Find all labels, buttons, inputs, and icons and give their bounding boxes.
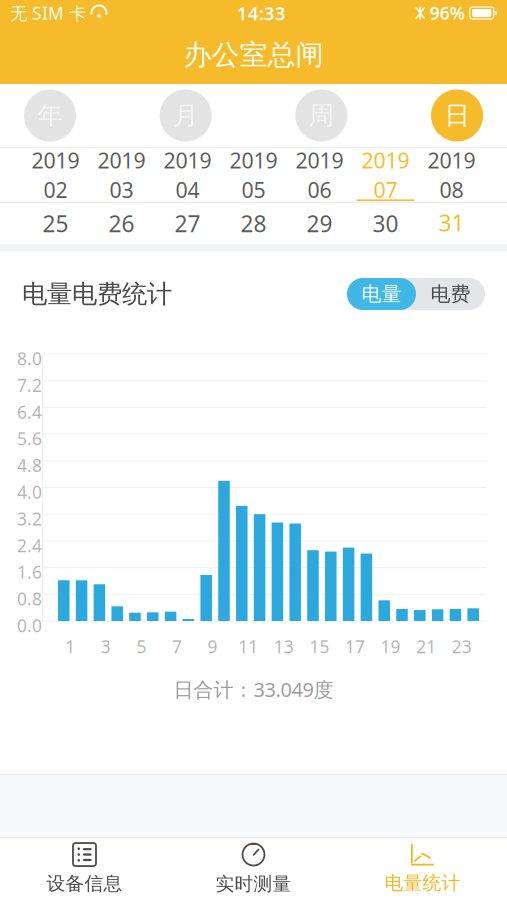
button[interactable]: 28 bbox=[220, 203, 286, 243]
staticText: 14:33 bbox=[237, 1, 286, 25]
button[interactable]: 27 bbox=[154, 203, 220, 243]
staticText: 29 bbox=[306, 208, 332, 238]
button[interactable]: 2019 bbox=[220, 149, 286, 201]
staticText: 27 bbox=[174, 208, 200, 238]
staticText: 04 bbox=[175, 175, 199, 204]
staticText: 26 bbox=[108, 208, 134, 238]
button[interactable]: 30 bbox=[352, 203, 418, 243]
staticText: 日合计：33.049度 bbox=[173, 676, 333, 703]
button[interactable]: 2019 bbox=[88, 149, 154, 201]
button[interactable]: 实时测量 bbox=[169, 838, 338, 900]
button[interactable]: 26 bbox=[88, 203, 154, 243]
staticText: 23 bbox=[452, 635, 472, 658]
staticText: 17 bbox=[345, 635, 365, 658]
staticText: 7 bbox=[172, 635, 182, 658]
button[interactable]: 25 bbox=[22, 203, 88, 243]
staticText: 0.8 bbox=[17, 587, 42, 610]
staticText: 2019 bbox=[97, 146, 145, 174]
button[interactable]: 2019 bbox=[154, 149, 220, 201]
staticText: 1.6 bbox=[17, 561, 42, 584]
button[interactable]: 2019 bbox=[286, 149, 352, 201]
staticText: 9 bbox=[208, 635, 218, 658]
staticText: 28 bbox=[240, 208, 266, 238]
staticText: 11 bbox=[238, 635, 258, 658]
staticText: 07 bbox=[373, 175, 397, 204]
staticText: 6.4 bbox=[17, 400, 42, 423]
staticText: 2019 bbox=[31, 146, 79, 174]
staticText: 8.0 bbox=[17, 347, 42, 370]
staticText: 3.2 bbox=[17, 507, 42, 530]
staticText: 办公室总闸 bbox=[183, 38, 323, 72]
staticText: 1 bbox=[65, 635, 75, 658]
staticText: 03 bbox=[109, 175, 133, 204]
staticText: 05 bbox=[241, 175, 265, 204]
staticText: 02 bbox=[43, 175, 67, 204]
staticText: 4.8 bbox=[17, 454, 42, 477]
staticText: 年 bbox=[37, 100, 62, 131]
staticText: 15 bbox=[309, 635, 329, 658]
staticText: 0.0 bbox=[17, 614, 42, 637]
staticText: 25 bbox=[42, 208, 68, 238]
staticText: 96% bbox=[430, 1, 465, 24]
button[interactable]: 电费 bbox=[416, 278, 485, 310]
staticText: 21 bbox=[416, 635, 436, 658]
button[interactable]: 电量统计 bbox=[338, 838, 507, 900]
staticText: 设备信息 bbox=[46, 872, 122, 895]
staticText: 周 bbox=[309, 100, 334, 131]
button[interactable]: 周 bbox=[289, 86, 353, 144]
staticText: 日 bbox=[444, 100, 469, 131]
staticText: 2019 bbox=[163, 146, 211, 174]
button[interactable]: 月 bbox=[154, 86, 218, 144]
staticText: 2019 bbox=[229, 146, 277, 174]
staticText: 无 SIM 卡 bbox=[10, 1, 86, 24]
button[interactable]: 电量 bbox=[347, 278, 416, 310]
button[interactable]: 2019 bbox=[418, 149, 484, 201]
staticText: 08 bbox=[439, 175, 463, 204]
button[interactable]: 日 bbox=[425, 86, 489, 144]
staticText: 5 bbox=[136, 635, 146, 658]
button[interactable]: 2019 bbox=[22, 149, 88, 201]
staticText: 2.4 bbox=[17, 534, 42, 557]
staticText: 5.6 bbox=[17, 427, 42, 450]
staticText: 7.2 bbox=[17, 374, 42, 397]
staticText: 06 bbox=[307, 175, 331, 204]
staticText: 2019 bbox=[361, 146, 409, 174]
button[interactable]: 29 bbox=[286, 203, 352, 243]
staticText: 电费 bbox=[430, 282, 470, 306]
button[interactable]: 年 bbox=[18, 86, 82, 144]
button[interactable]: 31 bbox=[418, 203, 484, 243]
staticText: 电量 bbox=[361, 282, 401, 306]
staticText: 2019 bbox=[427, 146, 475, 174]
staticText: 电量统计 bbox=[384, 871, 460, 894]
staticText: 31 bbox=[438, 208, 464, 238]
staticText: 电量电费统计 bbox=[22, 278, 172, 309]
button[interactable]: 设备信息 bbox=[0, 838, 169, 900]
staticText: 4.0 bbox=[17, 480, 42, 503]
staticText: 13 bbox=[274, 635, 294, 658]
button[interactable]: 2019 bbox=[352, 149, 418, 201]
staticText: 30 bbox=[372, 208, 398, 238]
staticText: 实时测量 bbox=[215, 872, 291, 895]
staticText: 19 bbox=[381, 635, 401, 658]
staticText: 月 bbox=[173, 100, 198, 131]
staticText: 2019 bbox=[295, 146, 343, 174]
staticText: 3 bbox=[101, 635, 111, 658]
